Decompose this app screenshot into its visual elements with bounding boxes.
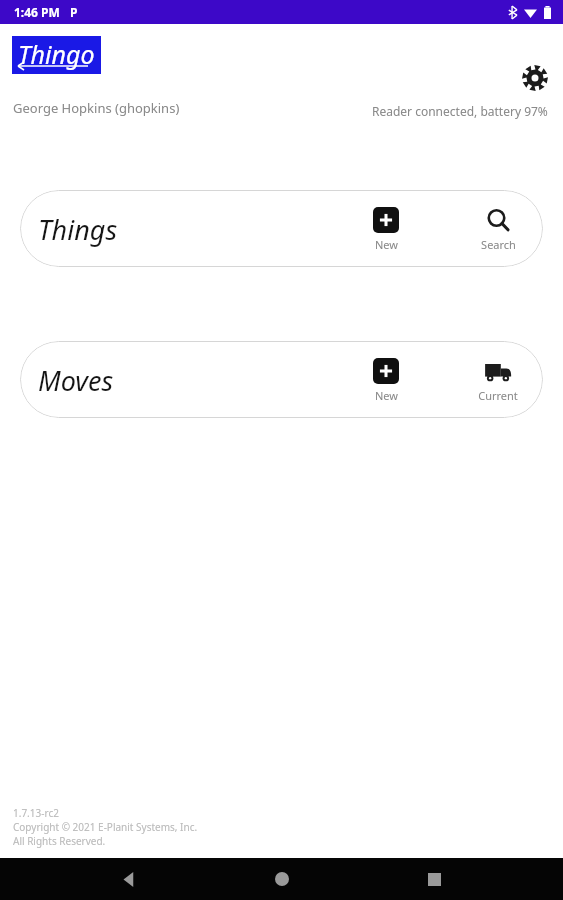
other: Search [486, 208, 511, 233]
staticText: Things [38, 211, 118, 248]
staticText: Moves [38, 362, 114, 399]
staticText: Thingo [18, 37, 95, 71]
other: Current moves [484, 357, 512, 385]
staticText: P [70, 4, 78, 20]
button[interactable]: New [355, 352, 417, 407]
staticText: Copyright © 2021 E-Planit Systems, Inc. [13, 820, 198, 834]
staticText: 1:46 PM [14, 4, 60, 20]
button[interactable]: Back [105, 858, 153, 900]
staticText: New [375, 388, 398, 403]
staticText: Search [481, 237, 516, 252]
button[interactable]: Search [467, 201, 529, 256]
staticText: 1.7.13-rc2 [13, 806, 59, 820]
staticText: New [375, 237, 398, 252]
button[interactable]: Recent apps [410, 858, 458, 900]
staticText: Current [478, 388, 518, 403]
button[interactable]: Current moves [467, 352, 529, 407]
button[interactable]: Moves [20, 341, 543, 418]
button[interactable]: New [355, 201, 417, 256]
staticText: All Rights Reserved. [13, 834, 106, 848]
button[interactable]: Home [258, 858, 306, 900]
button[interactable]: Settings [512, 55, 558, 101]
staticText: George Hopkins (ghopkins) [13, 99, 180, 117]
button[interactable]: Things [20, 190, 543, 267]
button[interactable]: Thingo [12, 36, 101, 74]
other: New [373, 207, 399, 233]
staticText: Reader connected, battery 97% [372, 103, 548, 119]
other: New [373, 358, 399, 384]
